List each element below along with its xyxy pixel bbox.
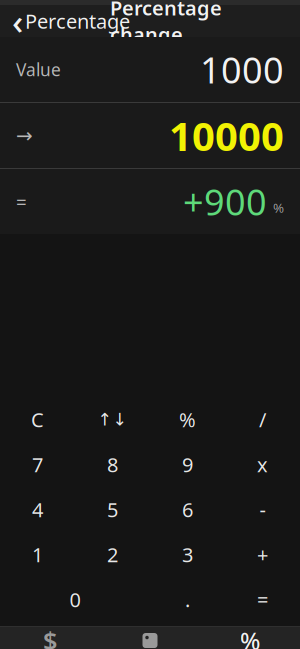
staticText: x xyxy=(257,451,268,478)
staticText: 1000 xyxy=(200,46,284,93)
button[interactable]: % xyxy=(150,397,225,442)
staticText: . xyxy=(185,586,190,613)
staticText: Value xyxy=(16,58,61,81)
button[interactable]: - xyxy=(225,487,300,532)
staticText: % xyxy=(179,406,196,433)
staticText: 1 xyxy=(32,541,43,568)
button[interactable]: 9 xyxy=(150,442,225,487)
button[interactable]: 7 xyxy=(0,442,75,487)
staticText: 5 xyxy=(107,496,118,523)
staticText: → xyxy=(16,124,33,147)
staticText: 2 xyxy=(107,541,118,568)
staticText: Percentage change xyxy=(110,0,222,47)
staticText: = xyxy=(16,189,27,214)
button[interactable]: ‹ xyxy=(6,0,136,48)
button[interactable]: 3 xyxy=(150,532,225,577)
button[interactable]: 6 xyxy=(150,487,225,532)
staticText: $ xyxy=(43,624,57,649)
staticText: Percentage xyxy=(25,8,130,34)
staticText: 10000 xyxy=(169,109,284,162)
staticText: +900 xyxy=(183,178,267,225)
button[interactable]: x xyxy=(225,442,300,487)
button[interactable]: = xyxy=(225,577,300,622)
staticText: 3 xyxy=(182,541,193,568)
button[interactable]: / xyxy=(225,397,300,442)
button[interactable]: 5 xyxy=(75,487,150,532)
staticText: 9 xyxy=(182,451,193,478)
staticText: = xyxy=(257,586,268,613)
button[interactable]: 8 xyxy=(75,442,150,487)
button[interactable]: + xyxy=(225,532,300,577)
button[interactable]: 4 xyxy=(0,487,75,532)
button[interactable]: 1 xyxy=(0,532,75,577)
staticText: % xyxy=(240,625,260,649)
button[interactable]: ↑↓ xyxy=(75,397,150,442)
button[interactable]: 0 xyxy=(0,577,150,622)
staticText: ↑↓ xyxy=(97,410,127,429)
staticText: % xyxy=(273,199,284,216)
button[interactable]: C xyxy=(0,397,75,442)
staticText: 8 xyxy=(107,451,118,478)
staticText: ‹ xyxy=(12,0,23,44)
staticText: / xyxy=(259,406,266,433)
staticText: C xyxy=(31,406,44,433)
button[interactable]: Value xyxy=(0,37,300,102)
staticText: 6 xyxy=(182,496,193,523)
button[interactable]: = xyxy=(0,169,300,234)
button[interactable]: Percentage xyxy=(200,626,300,649)
staticText: 0 xyxy=(69,586,80,613)
staticText: 4 xyxy=(32,496,43,523)
button[interactable]: 2 xyxy=(75,532,150,577)
staticText: 7 xyxy=(32,451,43,478)
staticText: - xyxy=(259,496,265,523)
button[interactable]: → xyxy=(0,103,300,168)
button[interactable]: Discount xyxy=(100,626,200,649)
staticText: + xyxy=(257,541,268,568)
button[interactable]: . xyxy=(150,577,225,622)
button[interactable]: Exchange rate xyxy=(0,626,100,649)
